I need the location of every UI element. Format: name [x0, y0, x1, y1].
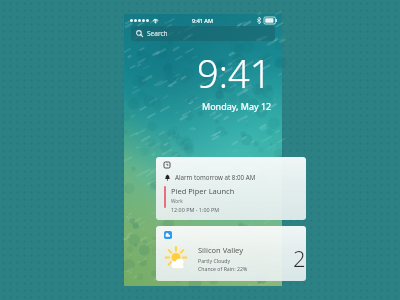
staticText: Work: [171, 198, 183, 205]
staticText: Chance of Rain: 22%: [198, 265, 248, 272]
staticText: 12:00 PM - 1:00 PM: [171, 206, 220, 213]
button[interactable]: Weather: [156, 226, 306, 281]
staticText: Silicon Valley: [198, 245, 243, 255]
staticText: Pied Piper Launch: [171, 186, 235, 196]
staticText: Monday, May 12: [202, 100, 272, 112]
staticText: 2: [293, 243, 306, 273]
button[interactable]: Search: [131, 26, 275, 41]
staticText: Alarm tomorrow at 8:00 AM: [175, 173, 256, 181]
button[interactable]: Clock: [156, 157, 306, 220]
staticText: 9:41: [197, 47, 272, 99]
staticText: 9:41 AM: [192, 17, 214, 24]
staticText: Partly Cloudy: [198, 257, 231, 264]
staticText: Search: [147, 29, 168, 38]
other: Clock: [164, 162, 170, 168]
other: Weather: [164, 231, 172, 239]
